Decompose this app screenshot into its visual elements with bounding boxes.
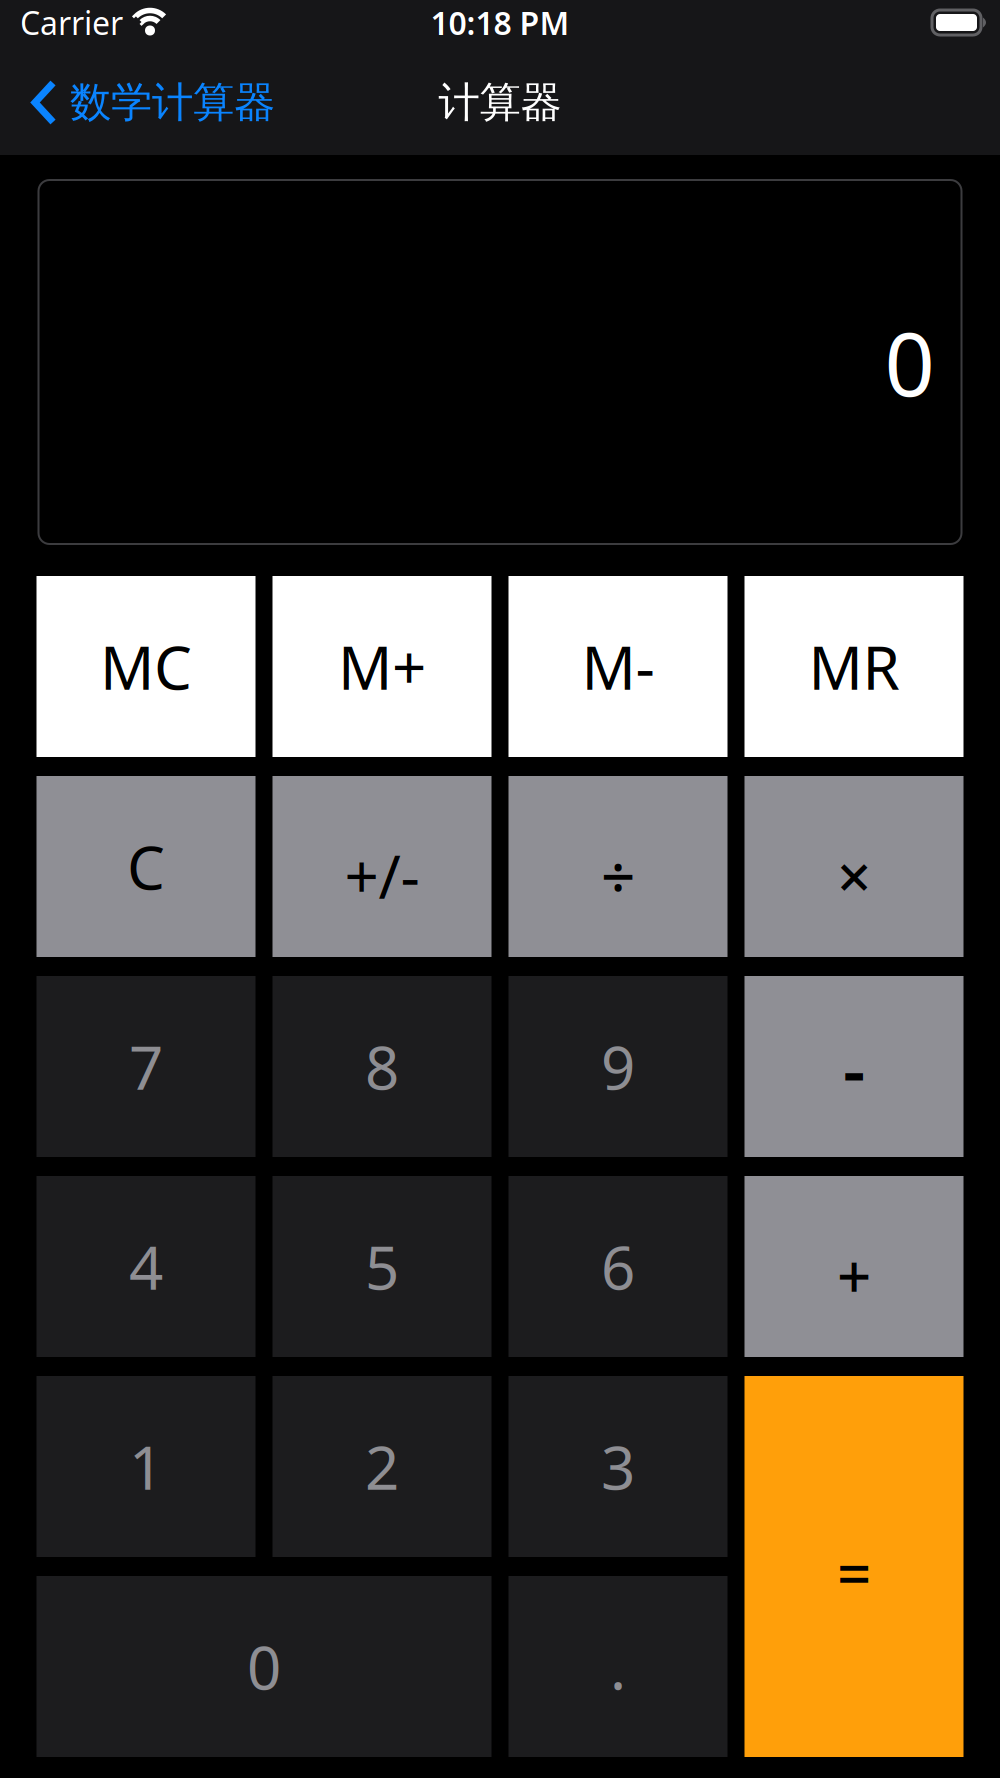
staticText: 5 (365, 1227, 399, 1306)
staticText: . (610, 1627, 626, 1706)
button[interactable]: 数学计算器 (30, 77, 275, 128)
staticText: - (843, 1022, 865, 1115)
button[interactable]: + (744, 1176, 963, 1357)
button[interactable]: - (744, 976, 963, 1157)
staticText: 3 (601, 1427, 635, 1506)
staticText: ÷ (601, 836, 635, 915)
button[interactable]: 8 (272, 976, 491, 1157)
staticText: 10:18 PM (430, 1, 569, 44)
staticText: + (837, 1236, 871, 1315)
staticText: 9 (601, 1027, 635, 1106)
staticText: M+ (338, 627, 426, 706)
staticText: 2 (365, 1427, 399, 1506)
button[interactable]: C (36, 776, 255, 957)
staticText: = (837, 1533, 871, 1612)
staticText: MC (100, 627, 192, 706)
staticText: 0 (884, 304, 934, 420)
button[interactable]: 1 (36, 1376, 255, 1557)
staticText: MR (808, 627, 899, 706)
button[interactable]: M- (508, 576, 727, 757)
staticText: 1 (129, 1427, 163, 1506)
button[interactable]: 3 (508, 1376, 727, 1557)
button[interactable]: +/- (272, 776, 491, 957)
staticText: 4 (129, 1227, 163, 1306)
staticText: C (127, 827, 165, 906)
button[interactable]: 7 (36, 976, 255, 1157)
staticText: 7 (129, 1027, 163, 1106)
staticText: 8 (365, 1027, 399, 1106)
button[interactable]: . (508, 1576, 727, 1757)
button[interactable]: 9 (508, 976, 727, 1157)
staticText: M- (581, 627, 654, 706)
staticText: 计算器 (438, 77, 561, 128)
button[interactable]: = (744, 1376, 963, 1757)
button[interactable]: ÷ (508, 776, 727, 957)
button[interactable]: MC (36, 576, 255, 757)
staticText: Carrier (20, 1, 123, 44)
staticText: 数学计算器 (70, 77, 275, 128)
button[interactable]: × (744, 776, 963, 957)
button[interactable]: MR (744, 576, 963, 757)
staticText: × (837, 836, 871, 915)
staticText: 0 (247, 1627, 281, 1706)
button[interactable]: 0 (36, 1576, 491, 1757)
button[interactable]: M+ (272, 576, 491, 757)
staticText: +/- (344, 836, 419, 915)
button[interactable]: 4 (36, 1176, 255, 1357)
staticText: 6 (601, 1227, 635, 1306)
button[interactable]: 6 (508, 1176, 727, 1357)
button[interactable]: 5 (272, 1176, 491, 1357)
button[interactable]: 2 (272, 1376, 491, 1557)
